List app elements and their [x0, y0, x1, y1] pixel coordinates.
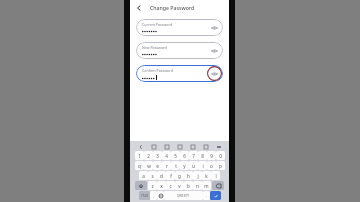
button[interactable]: 3: [153, 151, 162, 160]
button[interactable]: Space: [164, 191, 203, 200]
staticText: ,: [153, 193, 155, 199]
staticText: o: [210, 163, 213, 169]
button[interactable]: g: [175, 171, 184, 180]
button[interactable]: u: [189, 161, 198, 170]
staticText: d: [160, 173, 163, 179]
staticText: 3: [156, 153, 159, 159]
button[interactable]: ,: [150, 191, 157, 200]
staticText: h: [187, 173, 190, 179]
staticText: x: [160, 183, 163, 189]
button[interactable]: Keyboard tool 1: [137, 143, 144, 150]
staticText: s: [151, 173, 154, 179]
button[interactable]: z: [148, 181, 157, 190]
staticText: w: [147, 163, 151, 169]
staticText: n: [196, 183, 199, 189]
button[interactable]: n: [193, 181, 202, 190]
button[interactable]: y: [180, 161, 189, 170]
staticText: q: [138, 163, 141, 169]
staticText: 6: [183, 153, 186, 159]
staticText: ?123: [141, 194, 148, 198]
button[interactable]: 1: [135, 151, 144, 160]
button[interactable]: ?123: [139, 191, 150, 200]
button[interactable]: Modifier key: [212, 181, 224, 190]
button[interactable]: q: [135, 161, 144, 170]
button[interactable]: 2: [144, 151, 153, 160]
button[interactable]: Enter: [210, 191, 221, 200]
staticText: k: [205, 173, 208, 179]
button[interactable]: v: [175, 181, 184, 190]
staticText: c: [169, 183, 172, 189]
button[interactable]: a: [139, 171, 148, 180]
button[interactable]: 6: [180, 151, 189, 160]
button[interactable]: c: [166, 181, 175, 190]
button[interactable]: e: [153, 161, 162, 170]
button[interactable]: Current Password: [136, 19, 223, 36]
staticText: e: [156, 163, 159, 169]
button[interactable]: h: [184, 171, 193, 180]
staticText: Confirm Password: [142, 68, 173, 73]
staticText: j: [197, 173, 199, 179]
staticText: 7: [192, 153, 195, 159]
staticText: l: [215, 173, 217, 179]
button[interactable]: .: [203, 191, 210, 200]
staticText: 1: [138, 153, 141, 159]
button[interactable]: Confirm Password: [136, 65, 223, 82]
button[interactable]: p: [216, 161, 225, 170]
button[interactable]: Show password: [210, 46, 219, 55]
button[interactable]: Show password: [210, 69, 219, 78]
button[interactable]: Keyboard tool 6: [202, 143, 209, 150]
button[interactable]: 8: [198, 151, 207, 160]
staticText: Change Password: [150, 4, 195, 11]
button[interactable]: d: [157, 171, 166, 180]
button[interactable]: 9: [207, 151, 216, 160]
staticText: QWERTY: [177, 194, 190, 198]
staticText: v: [178, 183, 181, 189]
button[interactable]: j: [193, 171, 202, 180]
staticText: 2: [147, 153, 150, 159]
staticText: y: [183, 163, 186, 169]
button[interactable]: Keyboard tool 7: [215, 143, 222, 150]
button[interactable]: Keyboard tool 4: [176, 143, 183, 150]
button[interactable]: s: [148, 171, 157, 180]
button[interactable]: 0: [216, 151, 225, 160]
staticText: f: [170, 173, 172, 179]
staticText: 8: [201, 153, 204, 159]
button[interactable]: Keyboard tool 2: [150, 143, 157, 150]
button[interactable]: Back: [133, 2, 144, 13]
staticText: Current Password: [142, 22, 173, 27]
staticText: 0: [219, 153, 222, 159]
button[interactable]: Show password: [210, 23, 219, 32]
button[interactable]: f: [166, 171, 175, 180]
button[interactable]: 4: [162, 151, 171, 160]
staticText: New Password: [142, 45, 167, 50]
button[interactable]: w: [144, 161, 153, 170]
staticText: r: [166, 163, 168, 169]
staticText: t: [175, 163, 177, 169]
button[interactable]: i: [198, 161, 207, 170]
staticText: m: [204, 183, 209, 189]
button[interactable]: r: [162, 161, 171, 170]
staticText: u: [192, 163, 195, 169]
button[interactable]: Keyboard tool 3: [163, 143, 170, 150]
button[interactable]: m: [202, 181, 211, 190]
button[interactable]: o: [207, 161, 216, 170]
button[interactable]: x: [157, 181, 166, 190]
button[interactable]: l: [211, 171, 220, 180]
staticText: 9: [210, 153, 213, 159]
staticText: a: [142, 173, 145, 179]
button[interactable]: New Password: [136, 42, 223, 59]
button[interactable]: t: [171, 161, 180, 170]
staticText: b: [187, 183, 190, 189]
staticText: 5: [174, 153, 177, 159]
button[interactable]: 7: [189, 151, 198, 160]
button[interactable]: 5: [171, 151, 180, 160]
button[interactable]: Modifier key: [135, 181, 147, 190]
staticText: g: [178, 173, 181, 179]
button[interactable]: k: [202, 171, 211, 180]
button[interactable]: Change language: [157, 191, 164, 200]
button[interactable]: b: [184, 181, 193, 190]
staticText: z: [151, 183, 154, 189]
staticText: i: [202, 163, 204, 169]
button[interactable]: Keyboard tool 5: [189, 143, 196, 150]
staticText: .: [206, 193, 208, 199]
